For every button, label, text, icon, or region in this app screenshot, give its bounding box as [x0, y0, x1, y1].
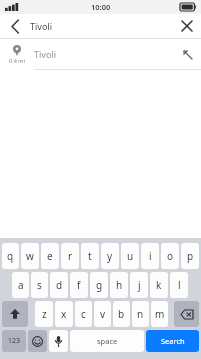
staticText: s — [37, 278, 42, 292]
button[interactable]: d — [50, 272, 68, 298]
staticText: k — [156, 278, 162, 292]
button[interactable]: j — [130, 272, 148, 298]
staticText: u — [127, 249, 134, 263]
staticText: n — [137, 307, 144, 321]
button[interactable]: Dictate — [49, 330, 68, 352]
button[interactable]: n — [132, 301, 149, 327]
staticText: Tivoli — [30, 20, 173, 32]
button[interactable]: s — [31, 272, 48, 298]
button[interactable]: i — [141, 243, 159, 269]
button[interactable]: c — [75, 301, 92, 327]
button[interactable]: Clear — [173, 14, 201, 38]
button[interactable]: x — [55, 301, 73, 327]
button[interactable]: h — [110, 272, 128, 298]
button[interactable]: e — [41, 243, 59, 269]
staticText: l — [178, 278, 181, 292]
button[interactable]: Back — [0, 14, 30, 38]
staticText: a — [18, 278, 24, 292]
staticText: o — [167, 249, 174, 263]
staticText: m — [155, 307, 165, 321]
staticText: y — [107, 249, 113, 263]
staticText: x — [61, 307, 67, 321]
button[interactable]: l — [170, 272, 188, 298]
button[interactable]: w — [21, 243, 39, 269]
staticText: h — [116, 278, 123, 292]
button[interactable]: u — [121, 243, 139, 269]
staticText: p — [187, 249, 194, 263]
staticText: d — [56, 278, 63, 292]
staticText: v — [100, 307, 106, 321]
staticText: z — [42, 307, 47, 321]
staticText: g — [96, 278, 103, 292]
button[interactable]: Fill in search — [173, 39, 201, 69]
staticText: r — [68, 249, 73, 263]
button[interactable]: y — [101, 243, 119, 269]
button[interactable]: k — [150, 272, 168, 298]
staticText: c — [81, 307, 86, 321]
staticText: f — [77, 278, 81, 292]
button[interactable]: Search — [146, 330, 199, 352]
staticText: w — [26, 249, 34, 263]
button[interactable]: b — [113, 301, 130, 327]
button[interactable]: m — [151, 301, 168, 327]
button[interactable]: f — [70, 272, 88, 298]
staticText: 10:00 — [91, 2, 111, 12]
staticText: e — [47, 249, 53, 263]
staticText: i — [149, 249, 152, 263]
staticText: j — [138, 278, 141, 292]
button[interactable]: v — [94, 301, 111, 327]
button[interactable]: z — [35, 301, 53, 327]
button[interactable]: Shift — [2, 301, 28, 327]
staticText: 123 — [8, 336, 21, 346]
staticText: t — [88, 249, 92, 263]
staticText: Tivoli — [34, 48, 173, 60]
button[interactable]: Emoji — [28, 330, 47, 352]
button[interactable]: t — [81, 243, 99, 269]
staticText: 0.4 mi — [9, 57, 25, 64]
button[interactable]: q — [2, 243, 19, 269]
button[interactable]: o — [161, 243, 179, 269]
button[interactable]: Delete — [174, 301, 199, 327]
staticText: space — [97, 336, 118, 346]
button[interactable]: 123 — [2, 330, 26, 352]
button[interactable]: p — [181, 243, 199, 269]
staticText: Search — [161, 336, 185, 346]
button[interactable]: g — [90, 272, 108, 298]
staticText: q — [7, 249, 14, 263]
button[interactable]: space — [70, 330, 144, 352]
button[interactable]: r — [61, 243, 79, 269]
button[interactable]: 0.4 mi — [0, 39, 201, 70]
staticText: b — [118, 307, 125, 321]
button[interactable]: a — [12, 272, 29, 298]
